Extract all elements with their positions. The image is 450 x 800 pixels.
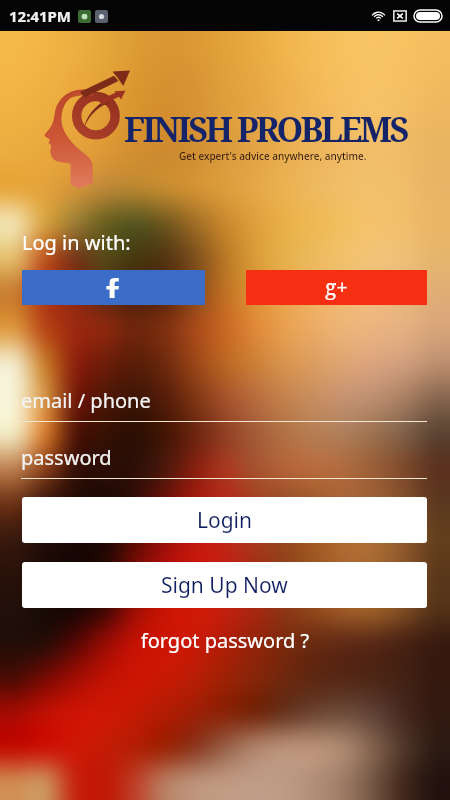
button[interactable]: Log in with Facebook — [22, 270, 205, 305]
staticText: password — [21, 444, 112, 471]
button[interactable]: email / phone — [21, 385, 427, 422]
staticText: Sign Up Now — [161, 571, 288, 600]
staticText: Login — [197, 506, 253, 535]
staticText: g+ — [325, 273, 349, 302]
button[interactable]: Login — [22, 497, 427, 543]
button[interactable]: Log in with Google Plus — [246, 270, 427, 305]
button[interactable]: Sign Up Now — [22, 562, 427, 608]
staticText: Log in with: — [22, 229, 131, 256]
staticText: email / phone — [21, 387, 151, 414]
button[interactable]: forgot password ? — [0, 627, 450, 654]
staticText: Get expert's advice anywhere, anytime. — [179, 149, 367, 163]
staticText: FINISH PROBLEMS — [124, 106, 407, 152]
staticText: 12:41PM — [9, 6, 71, 26]
button[interactable]: password — [21, 442, 427, 479]
